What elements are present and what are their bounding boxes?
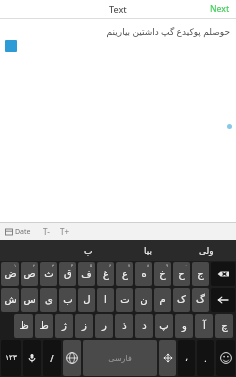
button[interactable]: د [135, 314, 153, 338]
button[interactable]: ن [135, 288, 152, 312]
button[interactable]: ب [59, 240, 118, 261]
staticText: ل [83, 294, 91, 306]
button[interactable]: ر [95, 314, 113, 338]
staticText: ض [4, 268, 17, 280]
staticText: ث [44, 268, 54, 280]
button[interactable]: حوصلم پوکیدع گپ داشتین بیارینم [0, 19, 236, 222]
staticText: ظ [19, 320, 29, 332]
button[interactable]: Move cursor [159, 340, 176, 376]
staticText: د [142, 320, 147, 332]
staticText: م [159, 294, 166, 306]
staticText: فارسی [108, 354, 132, 363]
staticText: T+ [60, 226, 70, 237]
staticText: ف [81, 268, 92, 280]
button[interactable]: ث [40, 262, 57, 286]
staticText: ژ [62, 320, 67, 332]
staticText: / [50, 352, 54, 364]
button[interactable]: Backspace [211, 262, 235, 286]
button[interactable]: پ [155, 314, 173, 338]
staticText: ۰ [185, 263, 188, 268]
staticText: ذ [122, 320, 127, 332]
button[interactable]: ظ [14, 314, 33, 338]
button[interactable]: Enter [211, 288, 235, 312]
button[interactable]: Next [210, 3, 230, 15]
button[interactable]: خ [154, 262, 171, 286]
button[interactable]: ز [75, 314, 93, 338]
button[interactable]: ش [1, 288, 19, 312]
staticText: حوصلم پوکیدع گپ داشتین بیارینم [106, 25, 230, 37]
button[interactable]: ف [78, 262, 95, 286]
button[interactable]: ا [97, 288, 114, 312]
button[interactable]: ل [78, 288, 95, 312]
staticText: Text [109, 3, 127, 15]
button[interactable]: ک [173, 288, 190, 312]
button[interactable]: آ [195, 314, 213, 338]
button[interactable]: ی [40, 288, 57, 312]
staticText: Next [210, 3, 230, 15]
staticText: ح [178, 268, 185, 280]
staticText: ر [102, 320, 107, 332]
staticText: ۴ [71, 263, 74, 268]
button[interactable]: Voice input [23, 340, 41, 376]
staticText: س [23, 294, 36, 306]
button[interactable]: ت [116, 288, 133, 312]
button[interactable]: گ [192, 288, 209, 312]
staticText: ۲ [33, 263, 36, 268]
staticText: پ [159, 320, 169, 332]
button[interactable]: ژ [55, 314, 73, 338]
button[interactable]: ص [21, 262, 38, 286]
staticText: . [204, 352, 207, 364]
button[interactable]: ع [116, 262, 133, 286]
staticText: آ [203, 320, 206, 332]
button[interactable]: ح [173, 262, 190, 286]
button[interactable]: غ [97, 262, 114, 286]
button[interactable]: . [197, 340, 214, 376]
button[interactable]: ، [178, 340, 195, 376]
button[interactable]: ق [59, 262, 76, 286]
staticText: ن [140, 294, 148, 306]
staticText: ک [177, 294, 186, 306]
button[interactable]: Increase text size [60, 226, 70, 237]
button[interactable]: / [43, 340, 61, 376]
staticText: ۸ [147, 263, 150, 268]
staticText: Date [15, 227, 31, 237]
staticText: گ [196, 294, 205, 306]
staticText: بیا [144, 246, 152, 256]
button[interactable]: ذ [115, 314, 133, 338]
staticText: ص [23, 268, 36, 280]
staticText: ه [141, 268, 147, 280]
button[interactable]: Emoji [216, 340, 235, 376]
button[interactable]: بیا [118, 240, 177, 261]
staticText: و [182, 320, 187, 332]
button[interactable]: Selection handle [5, 40, 17, 52]
button[interactable]: ه [135, 262, 152, 286]
button[interactable]: ج [192, 262, 209, 286]
button[interactable]: فارسی [83, 340, 157, 376]
staticText: ب [84, 246, 93, 256]
staticText: ۱۲۳ [5, 354, 17, 362]
staticText: چ [221, 320, 228, 332]
staticText: ۹ [166, 263, 169, 268]
button[interactable]: Change language [63, 340, 81, 376]
button[interactable]: ط [35, 314, 53, 338]
button[interactable]: ب [59, 288, 76, 312]
button[interactable]: Decrease text size [43, 226, 50, 237]
button[interactable]: س [21, 288, 38, 312]
staticText: ب [63, 294, 73, 306]
staticText: ط [39, 320, 49, 332]
staticText: ج [197, 268, 204, 280]
staticText: غ [103, 268, 109, 280]
staticText: ولی [199, 246, 214, 256]
staticText: ی [45, 294, 53, 306]
button[interactable]: ض [1, 262, 19, 286]
button[interactable]: و [175, 314, 193, 338]
staticText: ت [120, 294, 130, 306]
button[interactable]: چ [215, 314, 233, 338]
staticText: ز [82, 320, 87, 332]
staticText: ا [104, 294, 107, 306]
button[interactable]: م [154, 288, 171, 312]
button[interactable]: ۱۲۳ [1, 340, 21, 376]
button[interactable]: Date [4, 226, 32, 238]
button[interactable]: ولی [177, 240, 236, 261]
